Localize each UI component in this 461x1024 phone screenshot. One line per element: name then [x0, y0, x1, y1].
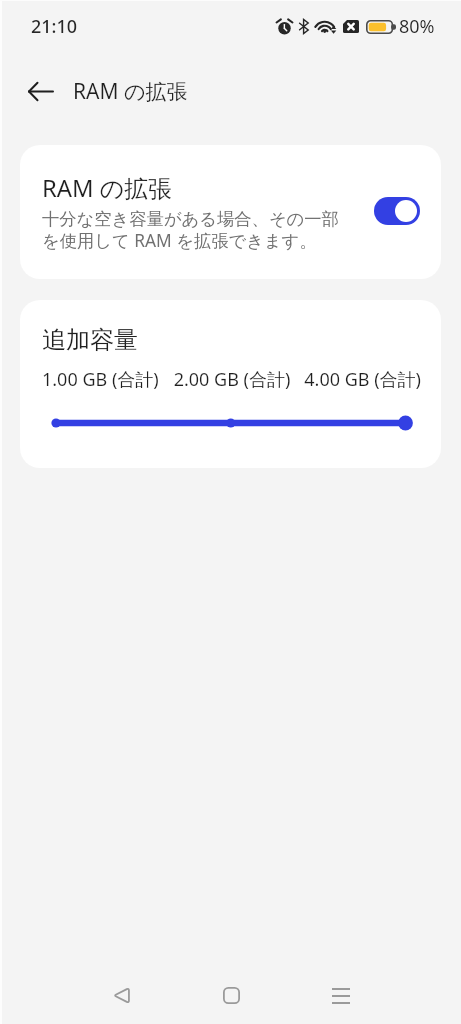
button[interactable]: Back — [89, 967, 153, 1024]
button[interactable]: Back — [16, 67, 64, 115]
staticText: 追加容量 — [42, 325, 138, 355]
button[interactable]: RAM expansion toggle — [374, 197, 420, 225]
staticText: 十分な空き容量がある場合、その一部 を使用して RAM を拡張できます。 — [42, 208, 339, 252]
staticText: 80% — [399, 14, 435, 39]
staticText: RAM の拡張 — [73, 77, 188, 106]
staticText: RAM の拡張 — [42, 172, 172, 205]
staticText: 2.00 GB (合計) — [169, 367, 295, 392]
button[interactable]: RAM の拡張 — [20, 145, 441, 279]
button[interactable]: Home — [199, 967, 263, 1024]
staticText: 1.00 GB (合計) — [42, 367, 169, 392]
button[interactable]: Recent apps — [309, 967, 373, 1024]
button[interactable]: Extra RAM size slider — [42, 412, 421, 434]
staticText: 21:10 — [31, 14, 78, 39]
staticText: 4.00 GB (合計) — [295, 367, 421, 392]
